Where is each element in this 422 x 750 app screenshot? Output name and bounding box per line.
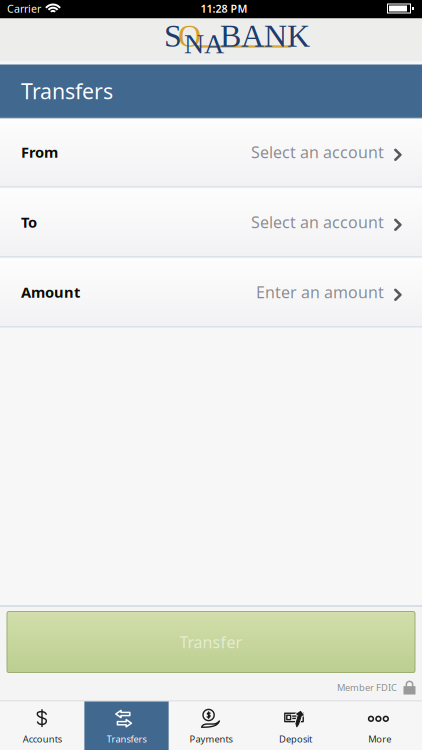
button[interactable]: Amount: [0, 258, 422, 325]
button[interactable]: Deposit: [253, 701, 338, 750]
staticText: O: [178, 18, 201, 54]
button[interactable]: More: [338, 701, 422, 750]
staticText: Payments: [189, 733, 232, 745]
staticText: 11:28 PM: [200, 1, 247, 16]
button[interactable]: Payments: [169, 701, 253, 750]
button[interactable]: Accounts: [0, 701, 84, 750]
staticText: Select an account: [251, 211, 384, 233]
staticText: Select an account: [251, 141, 384, 163]
staticText: Carrier: [7, 1, 41, 16]
button[interactable]: From: [0, 118, 422, 185]
staticText: To: [21, 212, 37, 232]
staticText: Transfers: [107, 733, 147, 745]
button[interactable]: To: [0, 188, 422, 255]
button[interactable]: Transfers: [84, 701, 169, 750]
staticText: NA: [184, 28, 224, 59]
staticText: Transfer: [179, 631, 242, 653]
staticText: BANK: [220, 18, 310, 54]
staticText: More: [368, 733, 391, 745]
staticText: Deposit: [279, 733, 312, 745]
staticText: Enter an amount: [256, 281, 384, 303]
staticText: From: [21, 142, 58, 162]
staticText: Transfers: [21, 77, 113, 105]
button[interactable]: Transfer: [7, 611, 415, 672]
staticText: Accounts: [23, 733, 62, 745]
staticText: Member FDIC: [337, 681, 397, 694]
staticText: S: [164, 18, 182, 54]
staticText: Amount: [21, 282, 80, 302]
